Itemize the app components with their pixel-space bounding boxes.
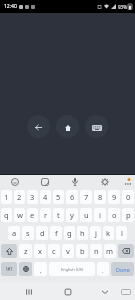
button[interactable]: 5 [53,190,64,204]
staticText: v [66,246,70,256]
button[interactable]: r [40,208,51,222]
staticText: English (US) [61,267,84,272]
button[interactable]: i [94,208,106,222]
staticText: g [67,228,72,238]
staticText: q [4,210,9,220]
staticText: 93% [118,4,127,10]
staticText: 3 [30,192,35,202]
staticText: s [26,228,30,238]
button[interactable] [99,286,111,298]
staticText: f [55,228,58,238]
button[interactable]: e [27,208,38,222]
button[interactable]: p [122,208,134,222]
button[interactable]: x [34,244,46,258]
button[interactable] [38,175,52,189]
staticText: 7 [84,192,89,202]
staticText: 0 [126,192,131,202]
button[interactable]: 0 [122,190,134,204]
button[interactable]: y [66,208,78,222]
button[interactable]: s [22,226,34,240]
button[interactable] [62,286,74,298]
button[interactable]: g [64,226,75,240]
staticText: , [40,267,42,275]
staticText: z [24,246,28,256]
staticText: x [38,246,42,256]
staticText: d [40,228,45,238]
button[interactable]: 4 [40,190,51,204]
button[interactable]: c [48,244,60,258]
staticText: 1 [4,192,9,202]
staticText: Done [116,266,130,273]
staticText: u [84,210,89,220]
button[interactable]: 8 [94,190,106,204]
button[interactable]: h [77,226,88,240]
button[interactable]: 3 [27,190,38,204]
staticText: h [80,228,85,238]
staticText: 5 [56,192,61,202]
button[interactable] [56,115,79,138]
button[interactable]: 9 [108,190,120,204]
staticText: c [52,246,56,256]
staticText: 4 [43,192,48,202]
button[interactable] [85,115,108,138]
button[interactable] [27,115,50,138]
button[interactable]: t [53,208,64,222]
button[interactable] [121,287,131,297]
button[interactable]: k [103,226,114,240]
staticText: m [106,246,114,256]
staticText: e [30,210,35,220]
button[interactable]: 2 [14,190,25,204]
button[interactable]: z [19,244,32,258]
button[interactable]: l [116,226,127,240]
button[interactable]: 1 [1,190,12,204]
staticText: !#1 [6,266,13,272]
staticText: 12:40 [4,3,17,10]
button[interactable]: f [50,226,62,240]
button[interactable]: j [90,226,101,240]
staticText: r [44,210,48,220]
staticText: l [121,228,123,238]
staticText: t [57,210,60,220]
staticText: a [12,228,17,238]
button[interactable]: . [97,262,109,276]
button[interactable] [23,286,35,298]
button[interactable]: n [90,244,102,258]
button[interactable]: v [62,244,74,258]
button[interactable] [8,175,22,189]
staticText: o [112,210,117,220]
staticText: w [17,210,23,220]
button[interactable]: , [34,262,47,276]
button[interactable] [121,176,133,188]
button[interactable]: m [104,244,116,258]
staticText: b [80,246,85,256]
button[interactable]: Done [111,262,134,276]
button[interactable]: English (US) [49,262,95,276]
staticText: . [102,267,104,275]
staticText: 8 [98,192,103,202]
staticText: k [106,228,111,238]
staticText: i [99,210,101,220]
staticText: j [95,228,97,238]
button[interactable]: q [1,208,12,222]
button[interactable]: u [80,208,92,222]
button[interactable]: a [8,226,20,240]
button[interactable] [98,175,112,189]
button[interactable]: 7 [80,190,92,204]
button[interactable]: !#1 [1,262,17,276]
staticText: 2 [17,192,22,202]
staticText: n [94,246,99,256]
button[interactable] [19,262,32,276]
button[interactable]: o [108,208,120,222]
staticText: y [70,210,74,220]
staticText: 9 [112,192,117,202]
button[interactable] [1,244,17,258]
staticText: p [126,210,131,220]
staticText: 6 [70,192,75,202]
button[interactable] [118,244,134,258]
button[interactable]: b [76,244,88,258]
button[interactable]: d [36,226,48,240]
button[interactable]: w [14,208,25,222]
button[interactable] [68,175,82,189]
button[interactable]: 6 [66,190,78,204]
